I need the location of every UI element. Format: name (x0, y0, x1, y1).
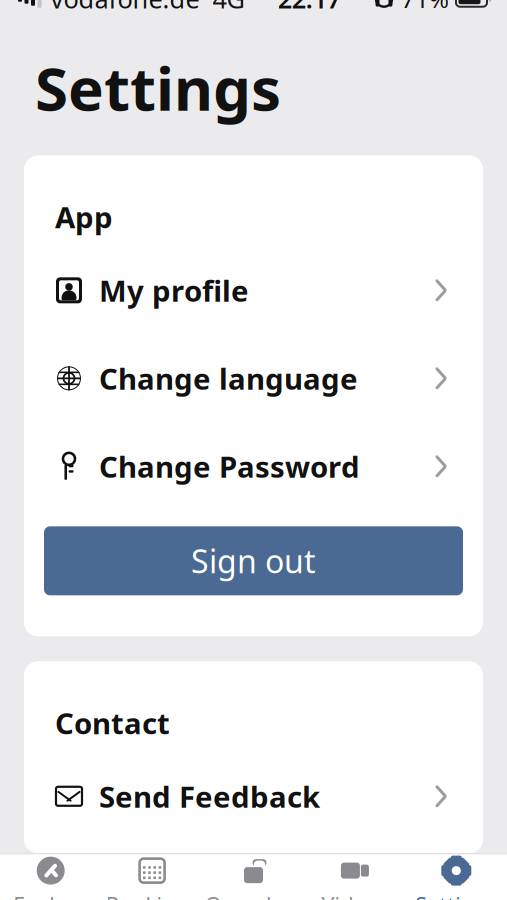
button[interactable]: Change language (24, 361, 483, 395)
staticText: 4G (212, 0, 244, 15)
staticText: Sign out (191, 540, 316, 582)
button[interactable]: Bookings (101, 854, 203, 900)
staticText: 22:17 (278, 0, 341, 15)
staticText: Settings (35, 48, 281, 127)
staticText: Videos (321, 891, 388, 900)
staticText: Settings (415, 891, 497, 900)
staticText: 71% (401, 0, 449, 15)
button[interactable]: My profile (24, 273, 483, 307)
button[interactable]: Send Feedback (24, 779, 483, 813)
staticText: vodafone.de (50, 0, 199, 15)
staticText: Explore (13, 891, 88, 900)
button[interactable]: Videos (304, 854, 406, 900)
staticText: Change Password (99, 447, 360, 486)
button[interactable]: Explore (0, 854, 101, 900)
button[interactable]: Sign out (24, 526, 483, 595)
button[interactable]: Settings (406, 854, 507, 900)
staticText: Change language (99, 359, 358, 398)
staticText: Send Feedback (99, 777, 320, 816)
staticText: My profile (99, 271, 249, 310)
button[interactable]: Open box (203, 854, 304, 900)
button[interactable]: Change Password (24, 449, 483, 483)
staticText: Bookings (106, 891, 199, 900)
staticText: Contact (55, 703, 170, 742)
staticText: Open box (205, 891, 302, 900)
staticText: App (55, 197, 113, 236)
